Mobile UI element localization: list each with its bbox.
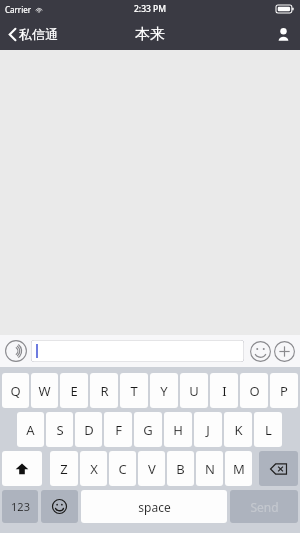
staticText: Z [60,460,68,478]
button[interactable]: T [120,373,148,408]
button[interactable]: S [46,412,73,447]
button[interactable]: E [60,373,88,408]
button[interactable]: Voice input [4,339,28,363]
staticText: U [189,382,199,400]
staticText: N [205,460,215,478]
staticText: F [115,421,122,439]
staticText: Send [250,499,279,515]
button[interactable]: 私信通 [0,18,66,50]
button[interactable]: R [90,373,118,408]
staticText: R [100,382,109,400]
button[interactable]: space [81,490,227,523]
button[interactable]: F [104,412,132,447]
button[interactable]: J [194,412,222,447]
button[interactable]: Y [150,373,178,408]
button[interactable]: M [225,451,252,486]
button[interactable]: Backspace [259,451,298,486]
button[interactable]: N [196,451,223,486]
button[interactable]: Add attachment [272,339,296,363]
staticText: B [176,460,185,478]
button[interactable]: O [240,373,268,408]
button[interactable]: Q [2,373,29,408]
staticText: O [249,382,260,400]
button[interactable]: Send [230,490,298,523]
staticText: 本来 [135,25,165,44]
button[interactable]: B [167,451,194,486]
staticText: J [206,421,210,439]
button[interactable]: C [109,451,136,486]
staticText: I [222,382,227,400]
staticText: L [265,421,272,439]
button[interactable] [31,340,244,362]
button[interactable]: Z [50,451,78,486]
button[interactable]: V [138,451,165,486]
staticText: 私信通 [19,26,58,42]
button[interactable]: Emoji keyboard [41,490,78,523]
staticText: K [234,421,243,439]
staticText: S [56,421,64,439]
button[interactable]: A [17,412,44,447]
staticText: Carrier [5,4,32,15]
staticText: M [233,460,245,478]
button[interactable]: Emoji [248,339,272,363]
staticText: H [173,421,183,439]
staticText: T [130,382,138,400]
button[interactable]: L [254,412,282,447]
staticText: Q [10,382,21,400]
button[interactable]: Shift [2,451,42,486]
staticText: E [70,382,78,400]
staticText: X [90,460,98,478]
staticText: space [138,499,171,515]
button[interactable]: Profile [266,18,300,50]
staticText: 2:33 PM [134,3,167,15]
button[interactable]: W [31,373,58,408]
staticText: C [118,460,127,478]
staticText: V [148,460,156,478]
button[interactable]: P [270,373,298,408]
button[interactable]: D [75,412,102,447]
button[interactable]: K [224,412,252,447]
button[interactable]: 123 [2,490,38,523]
button[interactable]: X [80,451,107,486]
button[interactable]: I [210,373,238,408]
staticText: P [280,382,288,400]
staticText: W [38,382,51,400]
button[interactable]: H [164,412,192,447]
button[interactable]: G [134,412,162,447]
staticText: G [143,421,153,439]
staticText: D [84,421,94,439]
button[interactable]: U [180,373,208,408]
staticText: 123 [11,499,30,514]
staticText: Y [160,382,168,400]
staticText: A [26,421,35,439]
